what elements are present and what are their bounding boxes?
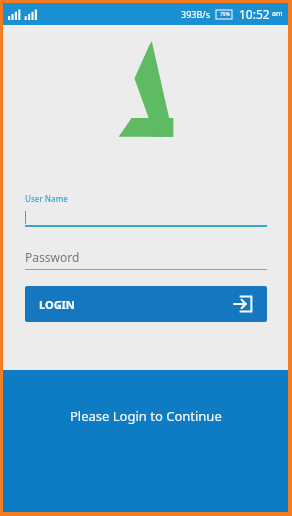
staticText: Password <box>25 249 80 265</box>
staticText: User Name <box>25 193 68 204</box>
button[interactable]: Password <box>3 249 288 270</box>
button[interactable]: LOGIN <box>25 286 267 322</box>
button[interactable]: User Name <box>3 193 288 227</box>
staticText: 10:52 <box>239 6 270 22</box>
staticText: am <box>272 9 283 19</box>
staticText: LOGIN <box>39 297 75 312</box>
staticText: Please Login to Continue <box>70 407 222 425</box>
staticText: 79% <box>220 11 230 18</box>
staticText: 393B/s <box>181 8 210 20</box>
other: Login <box>233 294 253 314</box>
